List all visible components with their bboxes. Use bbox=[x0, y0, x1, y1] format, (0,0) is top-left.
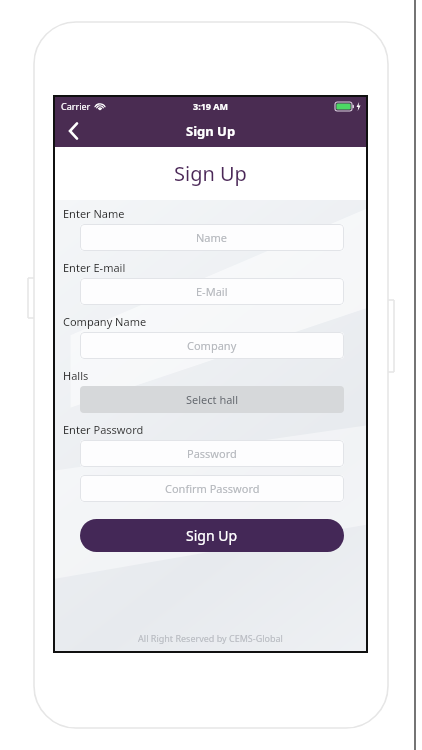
staticText: Sign Up bbox=[186, 122, 236, 140]
button[interactable]: Confirm Password bbox=[80, 475, 344, 502]
staticText: Halls bbox=[63, 368, 89, 383]
staticText: Company bbox=[187, 338, 237, 353]
staticText: Confirm Password bbox=[165, 481, 260, 496]
button[interactable]: Sign Up bbox=[80, 519, 344, 552]
staticText: Enter Name bbox=[63, 206, 125, 221]
staticText: Enter Password bbox=[63, 422, 144, 437]
button[interactable]: Company bbox=[80, 332, 344, 359]
staticText: Name bbox=[196, 230, 228, 245]
staticText: Select hall bbox=[186, 392, 239, 407]
button[interactable]: Password bbox=[80, 440, 344, 467]
button[interactable]: E-Mail bbox=[80, 278, 344, 305]
staticText: Enter E-mail bbox=[63, 260, 126, 275]
staticText: Sign Up bbox=[186, 526, 238, 545]
staticText: 3:19 AM bbox=[193, 100, 229, 112]
staticText: Company Name bbox=[63, 314, 147, 329]
staticText: Carrier bbox=[61, 100, 91, 112]
staticText: All Right Reserved by CEMS-Global bbox=[55, 632, 366, 644]
button[interactable]: Select hall bbox=[80, 386, 344, 413]
staticText: Sign Up bbox=[174, 160, 247, 187]
button[interactable]: Back bbox=[55, 115, 91, 147]
staticText: E-Mail bbox=[196, 284, 228, 299]
button[interactable]: Name bbox=[80, 224, 344, 251]
staticText: Password bbox=[187, 446, 237, 461]
